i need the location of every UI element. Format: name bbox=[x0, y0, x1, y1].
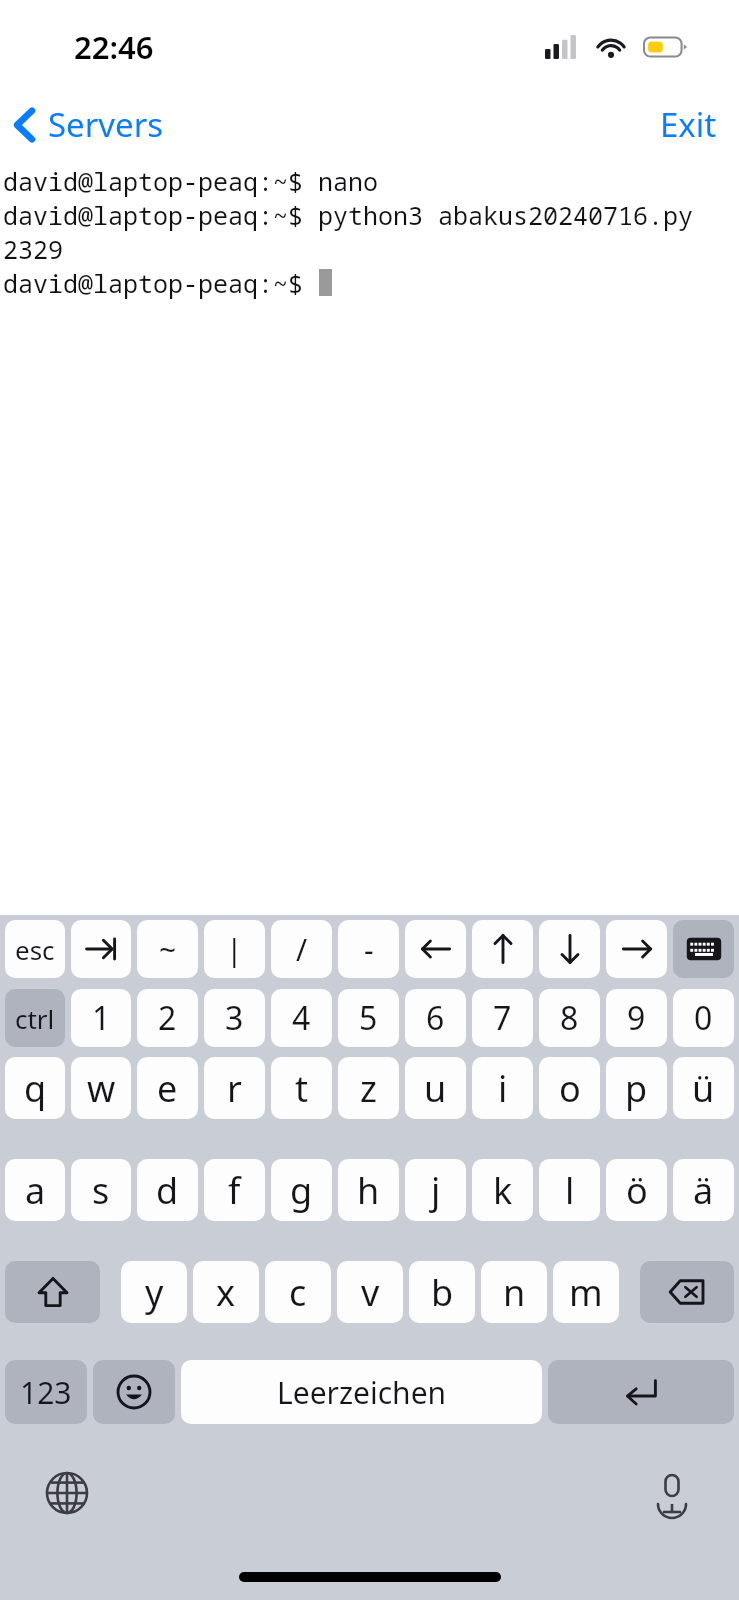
staticText: q bbox=[24, 1064, 47, 1113]
button[interactable]: y bbox=[121, 1261, 187, 1323]
button[interactable]: Next keyboard bbox=[34, 1460, 100, 1526]
staticText: 2329 bbox=[3, 232, 64, 266]
staticText: 22:46 bbox=[74, 26, 154, 68]
button[interactable]: g bbox=[271, 1159, 332, 1221]
staticText: a bbox=[25, 1166, 46, 1215]
button[interactable]: c bbox=[265, 1261, 331, 1323]
button[interactable]: 7 bbox=[472, 989, 533, 1047]
button[interactable]: m bbox=[553, 1261, 619, 1323]
staticText: ä bbox=[693, 1166, 714, 1215]
button[interactable]: l bbox=[539, 1159, 600, 1221]
staticText: Leerzeichen bbox=[277, 1372, 447, 1413]
staticText: 9 bbox=[627, 996, 646, 1040]
button[interactable]: Backspace bbox=[640, 1261, 734, 1323]
button[interactable]: Shift bbox=[5, 1261, 100, 1323]
staticText: l bbox=[565, 1166, 575, 1215]
staticText: s bbox=[92, 1166, 110, 1215]
staticText: david@laptop-peaq:~$ nano bbox=[3, 164, 379, 198]
button[interactable]: t bbox=[271, 1057, 332, 1119]
button[interactable]: 9 bbox=[606, 989, 667, 1047]
staticText: david@laptop-peaq:~$ bbox=[3, 266, 319, 300]
button[interactable]: n bbox=[481, 1261, 547, 1323]
staticText: v bbox=[361, 1268, 380, 1317]
staticText: 5 bbox=[359, 996, 378, 1040]
staticText: Exit bbox=[660, 102, 717, 147]
staticText: / bbox=[296, 929, 308, 970]
button[interactable]: | bbox=[204, 920, 265, 978]
staticText: j bbox=[431, 1166, 441, 1215]
button[interactable]: v bbox=[337, 1261, 403, 1323]
staticText: x bbox=[216, 1268, 236, 1317]
staticText: david@laptop-peaq:~$ python3 abakus20240… bbox=[3, 198, 694, 232]
button[interactable]: 6 bbox=[405, 989, 466, 1047]
button[interactable]: - bbox=[338, 920, 399, 978]
button[interactable]: s bbox=[71, 1159, 131, 1221]
staticText: 6 bbox=[426, 996, 445, 1040]
staticText: ö bbox=[626, 1166, 648, 1215]
button[interactable]: Return bbox=[548, 1360, 734, 1424]
button[interactable]: r bbox=[204, 1057, 265, 1119]
button[interactable]: 5 bbox=[338, 989, 399, 1047]
button[interactable]: Down bbox=[539, 920, 600, 978]
staticText: esc bbox=[15, 932, 55, 967]
button[interactable]: b bbox=[409, 1261, 475, 1323]
button[interactable]: ü bbox=[673, 1057, 734, 1119]
button[interactable]: h bbox=[338, 1159, 399, 1221]
staticText: w bbox=[87, 1064, 116, 1113]
staticText: 3 bbox=[225, 996, 244, 1040]
staticText: z bbox=[360, 1064, 377, 1113]
button[interactable]: w bbox=[71, 1057, 131, 1119]
button[interactable]: ~ bbox=[137, 920, 198, 978]
staticText: ctrl bbox=[15, 1001, 55, 1036]
button[interactable]: u bbox=[405, 1057, 466, 1119]
button[interactable]: 3 bbox=[204, 989, 265, 1047]
button[interactable]: i bbox=[472, 1057, 533, 1119]
button[interactable]: Hide keyboard bbox=[673, 920, 734, 978]
button[interactable]: ctrl bbox=[5, 989, 65, 1047]
button[interactable]: e bbox=[137, 1057, 198, 1119]
staticText: u bbox=[424, 1064, 447, 1113]
staticText: 4 bbox=[292, 996, 311, 1040]
button[interactable]: 123 bbox=[5, 1360, 87, 1424]
button[interactable]: x bbox=[193, 1261, 259, 1323]
staticText: g bbox=[290, 1166, 313, 1215]
button[interactable]: j bbox=[405, 1159, 466, 1221]
staticText: e bbox=[157, 1064, 178, 1113]
button[interactable]: Tab bbox=[71, 920, 131, 978]
button[interactable]: Servers bbox=[0, 96, 178, 153]
button[interactable]: o bbox=[539, 1057, 600, 1119]
button[interactable]: 8 bbox=[539, 989, 600, 1047]
button[interactable]: Emoji bbox=[93, 1360, 175, 1424]
staticText: 7 bbox=[493, 996, 512, 1040]
button[interactable]: esc bbox=[5, 920, 65, 978]
button[interactable]: q bbox=[5, 1057, 65, 1119]
button[interactable]: Right bbox=[606, 920, 667, 978]
button[interactable]: Left bbox=[405, 920, 466, 978]
button[interactable]: 0 bbox=[673, 989, 734, 1047]
button[interactable]: 2 bbox=[137, 989, 198, 1047]
button[interactable]: p bbox=[606, 1057, 667, 1119]
button[interactable]: ä bbox=[673, 1159, 734, 1221]
button[interactable]: Leerzeichen bbox=[181, 1360, 542, 1424]
staticText: 2 bbox=[158, 996, 177, 1040]
button[interactable]: / bbox=[271, 920, 332, 978]
staticText: 0 bbox=[694, 996, 713, 1040]
button[interactable]: a bbox=[5, 1159, 65, 1221]
button[interactable]: 1 bbox=[71, 989, 131, 1047]
staticText: 123 bbox=[20, 1372, 72, 1413]
button[interactable]: d bbox=[137, 1159, 198, 1221]
button[interactable]: k bbox=[472, 1159, 533, 1221]
staticText: ~ bbox=[159, 929, 177, 970]
button[interactable]: f bbox=[204, 1159, 265, 1221]
staticText: i bbox=[498, 1064, 508, 1113]
staticText: h bbox=[357, 1166, 380, 1215]
button[interactable]: Dictate bbox=[639, 1460, 705, 1526]
staticText: o bbox=[559, 1064, 581, 1113]
staticText: - bbox=[364, 929, 374, 970]
button[interactable]: z bbox=[338, 1057, 399, 1119]
button[interactable]: ö bbox=[606, 1159, 667, 1221]
button[interactable]: 4 bbox=[271, 989, 332, 1047]
staticText: 1 bbox=[92, 996, 111, 1040]
button[interactable]: Exit bbox=[638, 94, 739, 155]
button[interactable]: Up bbox=[472, 920, 533, 978]
